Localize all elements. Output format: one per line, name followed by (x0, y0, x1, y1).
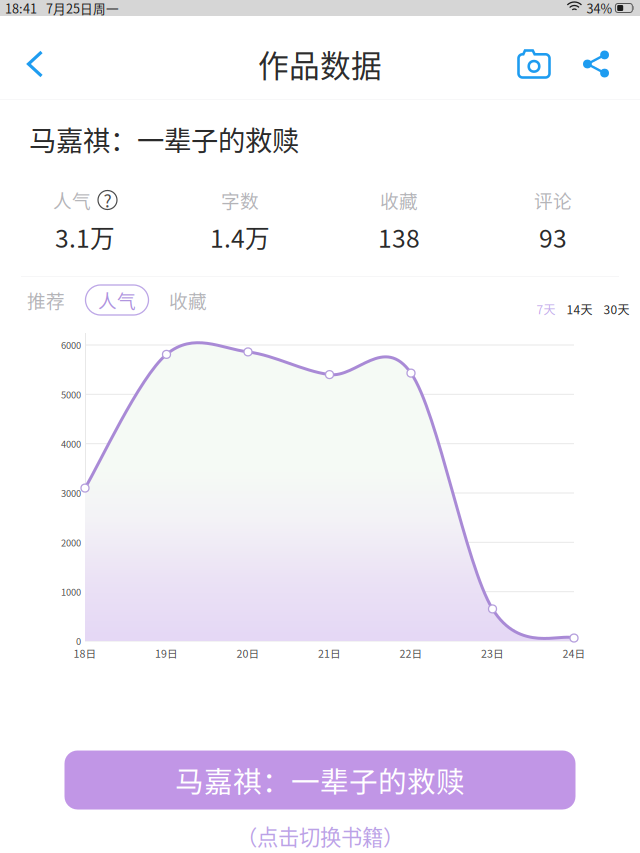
staticText: 22日 (399, 645, 422, 661)
staticText: 2000 (61, 536, 81, 549)
staticText: ? (103, 187, 111, 213)
staticText: 作品数据 (258, 42, 382, 86)
staticText: 马嘉祺：一辈子的救赎 (29, 119, 299, 159)
staticText: 收藏 (169, 286, 207, 313)
button[interactable]: Share (568, 37, 624, 91)
staticText: 评论 (534, 186, 572, 213)
staticText: 93 (539, 219, 567, 255)
button[interactable]: 人气 (85, 285, 148, 315)
staticText: 19日 (155, 645, 178, 661)
staticText: 4000 (61, 437, 81, 450)
staticText: 人气 (53, 186, 91, 213)
button[interactable]: Camera (506, 37, 562, 91)
staticText: 字数 (221, 186, 259, 213)
staticText: 人气 (98, 286, 136, 313)
staticText: 14天 (566, 300, 592, 318)
button[interactable]: Back (8, 37, 62, 91)
staticText: （点击切换书籍） (236, 821, 404, 851)
button[interactable]: 推荐 (22, 285, 70, 315)
button[interactable]: 7天 (536, 300, 555, 318)
staticText: 收藏 (380, 186, 418, 213)
staticText: 34% (586, 0, 612, 17)
staticText: 23日 (481, 645, 504, 661)
staticText: 马嘉祺：一辈子的救赎 (175, 759, 465, 801)
staticText: 24日 (562, 645, 585, 661)
staticText: 0 (76, 634, 81, 648)
button[interactable]: （点击切换书籍） (236, 821, 404, 851)
button[interactable]: 马嘉祺：一辈子的救赎 (64, 750, 575, 809)
staticText: 20日 (236, 645, 259, 661)
staticText: 7天 (536, 300, 555, 318)
staticText: 3.1万 (55, 219, 115, 255)
staticText: 18:41 (5, 0, 37, 17)
button[interactable]: 14天 (566, 300, 592, 318)
staticText: 推荐 (27, 286, 65, 313)
staticText: 21日 (318, 645, 341, 661)
button[interactable]: 收藏 (164, 285, 212, 315)
staticText: 138 (378, 219, 420, 255)
staticText: 3000 (61, 486, 81, 500)
staticText: 30天 (603, 300, 629, 318)
staticText: 18日 (73, 645, 96, 661)
staticText: 6000 (61, 338, 81, 352)
staticText: 1.4万 (210, 219, 270, 255)
staticText: 1000 (61, 585, 81, 598)
staticText: 7月25日周一 (46, 0, 119, 17)
staticText: 5000 (61, 388, 81, 401)
button[interactable]: 30天 (603, 300, 629, 318)
